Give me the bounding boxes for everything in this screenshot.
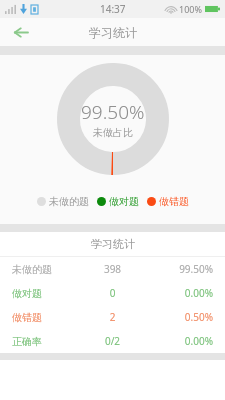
button[interactable]: 做错题 [0,305,225,329]
button[interactable]: 做对题 [0,281,225,305]
staticText: 0.00% [146,334,213,348]
staticText: 0.00% [146,286,213,300]
staticText: 学习统计 [89,25,137,40]
button[interactable]: Back [0,18,40,46]
staticText: 2 [79,310,146,324]
staticText: 100% [179,3,202,15]
button[interactable]: 做错题 [147,195,189,208]
staticText: 做错题 [159,195,189,208]
staticText: 0/2 [79,334,146,348]
staticText: 14:37 [100,2,126,16]
staticText: 398 [79,262,146,276]
staticText: 做对题 [109,195,139,208]
staticText: 未做的题 [12,263,79,276]
staticText: 未做的题 [49,195,89,208]
staticText: 做错题 [12,311,79,324]
staticText: 0.50% [146,310,213,324]
button[interactable]: 未做的题 [37,195,89,208]
button[interactable]: 做对题 [97,195,139,208]
staticText: 学习统计 [91,237,135,251]
button[interactable]: 未做的题 [0,257,225,281]
staticText: 未做占比 [93,126,133,139]
staticText: 99.50% [146,262,213,276]
button[interactable]: 正确率 [0,329,225,353]
staticText: 正确率 [12,335,79,348]
staticText: 做对题 [12,287,79,300]
staticText: 99.50% [81,99,145,125]
staticText: 0 [79,286,146,300]
